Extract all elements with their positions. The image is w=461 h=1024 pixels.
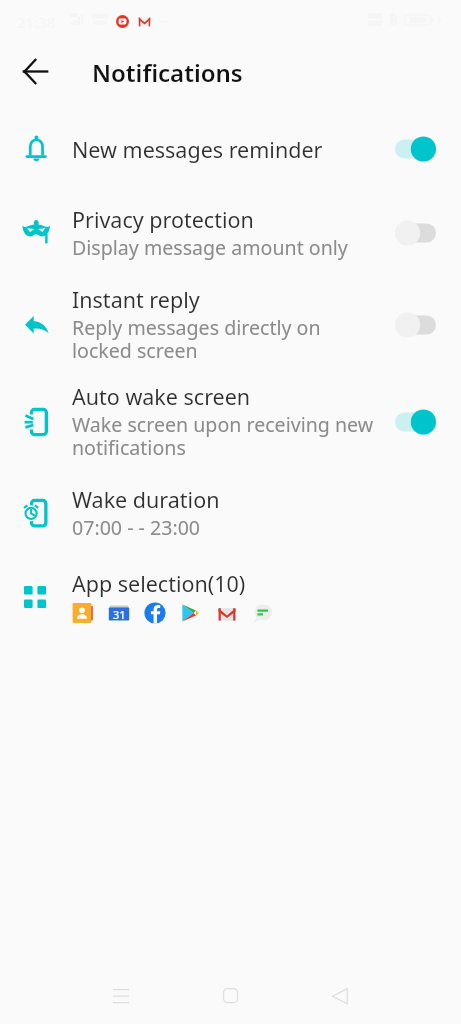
button[interactable]: Auto wake screen	[0, 373, 461, 470]
button[interactable]: Toggle Auto wake screen	[393, 405, 441, 439]
button[interactable]: Privacy protection	[0, 190, 461, 276]
staticText: App selection(10)	[72, 569, 246, 598]
button[interactable]: Instant reply	[0, 277, 461, 372]
button[interactable]: Recent apps	[92, 973, 150, 1019]
button[interactable]: Back	[11, 47, 60, 96]
staticText: 31	[113, 607, 126, 622]
button[interactable]: Toggle New messages reminder	[393, 132, 441, 166]
button[interactable]: Wake duration	[0, 469, 461, 557]
staticText: 07:00 - - 23:00	[72, 514, 201, 541]
staticText: Wake screen upon receiving new notificat…	[72, 411, 374, 461]
staticText: Instant reply	[72, 285, 200, 314]
staticText: New messages reminder	[72, 135, 323, 164]
button[interactable]: Home	[202, 973, 260, 1019]
staticText: Wake duration	[72, 485, 220, 514]
staticText: Privacy protection	[72, 205, 254, 234]
staticText: Notifications	[92, 56, 243, 89]
button[interactable]: Back	[311, 973, 369, 1019]
button[interactable]: New messages reminder	[0, 105, 461, 193]
staticText: Auto wake screen	[72, 382, 251, 411]
button[interactable]: App selection(10)	[0, 554, 461, 639]
staticText: Display message amount only	[72, 234, 348, 261]
button[interactable]: Toggle Privacy protection	[393, 216, 441, 250]
staticText: Reply messages directly on locked screen	[72, 314, 321, 364]
button[interactable]: Toggle Instant reply	[393, 308, 441, 342]
